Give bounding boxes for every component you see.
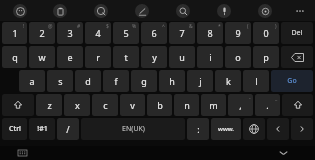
button[interactable]: d — [75, 70, 101, 92]
staticText: z — [47, 99, 52, 111]
button[interactable]: , — [228, 94, 253, 116]
button[interactable]: Translate — [80, 0, 121, 21]
button[interactable]: Ctrl — [2, 118, 27, 140]
button[interactable]: More options — [285, 0, 315, 21]
button[interactable]: Handwriting — [121, 0, 162, 21]
button[interactable]: b — [147, 94, 172, 116]
button[interactable]: Go — [271, 70, 313, 92]
staticText: _ — [275, 95, 278, 102]
button[interactable]: EN(UK) — [81, 118, 185, 140]
button[interactable]: Voice input — [203, 0, 244, 21]
button[interactable]: y — [141, 46, 167, 68]
staticText: r — [96, 51, 100, 63]
button[interactable]: 1 — [2, 22, 27, 44]
button[interactable]: m — [201, 94, 226, 116]
button[interactable]: Change language — [243, 118, 265, 140]
button[interactable]: 4 — [85, 22, 111, 44]
staticText: * — [218, 23, 221, 30]
button[interactable]: 8 — [197, 22, 223, 44]
button[interactable]: v — [120, 94, 145, 116]
button[interactable]: z — [36, 94, 62, 116]
staticText: 7 — [179, 27, 185, 39]
button[interactable]: i — [197, 46, 223, 68]
button[interactable]: Clipboard — [40, 0, 80, 21]
button[interactable]: : — [187, 118, 209, 140]
staticText: EN(UK) — [122, 124, 145, 134]
button[interactable]: Backspace — [281, 46, 313, 68]
staticText: m — [209, 99, 218, 111]
button[interactable]: 5 — [113, 22, 139, 44]
button[interactable]: 9 — [225, 22, 251, 44]
button[interactable]: p — [253, 46, 279, 68]
staticText: 8 — [207, 27, 213, 39]
button[interactable]: k — [215, 70, 241, 92]
button[interactable]: c — [92, 94, 118, 116]
button[interactable]: t — [113, 46, 139, 68]
button[interactable]: 6 — [141, 22, 167, 44]
staticText: ( — [247, 23, 249, 30]
button[interactable]: Hide keyboard — [275, 146, 291, 160]
button[interactable]: a — [19, 70, 45, 92]
button[interactable]: x — [64, 94, 90, 116]
button[interactable]: Move cursor right — [291, 118, 313, 140]
button[interactable]: 7 — [169, 22, 195, 44]
button[interactable]: Shift — [282, 94, 313, 116]
button[interactable]: q — [2, 46, 27, 68]
staticText: 6 — [151, 27, 157, 39]
staticText: 5 — [123, 27, 129, 39]
staticText: @ — [48, 23, 53, 30]
button[interactable]: www. — [211, 118, 241, 140]
button[interactable]: Shift — [2, 94, 34, 116]
button[interactable]: l — [243, 70, 269, 92]
staticText: w — [38, 51, 46, 63]
button[interactable]: w — [29, 46, 55, 68]
staticText: 9 — [235, 27, 241, 39]
staticText: b — [157, 99, 163, 111]
staticText: i — [209, 51, 212, 63]
staticText: y — [152, 51, 157, 63]
button[interactable]: n — [174, 94, 199, 116]
staticText: . — [266, 99, 269, 111]
button[interactable]: o — [225, 46, 251, 68]
staticText: t — [124, 51, 128, 63]
staticText: g — [141, 75, 147, 87]
button[interactable]: r — [85, 46, 111, 68]
button[interactable]: e — [57, 46, 83, 68]
staticText: v — [130, 99, 135, 111]
button[interactable]: Move cursor left — [267, 118, 289, 140]
button[interactable]: j — [187, 70, 213, 92]
staticText: : — [197, 123, 200, 135]
staticText: Ctrl — [9, 124, 21, 134]
staticText: ! — [23, 23, 25, 30]
staticText: e — [67, 51, 73, 63]
staticText: d — [85, 75, 91, 87]
button[interactable]: . — [255, 94, 280, 116]
button[interactable]: Search — [162, 0, 203, 21]
button[interactable]: 0 — [253, 22, 279, 44]
button[interactable]: h — [159, 70, 185, 92]
button[interactable]: s — [47, 70, 73, 92]
staticText: 0 — [263, 27, 269, 39]
staticText: l — [255, 75, 258, 87]
button[interactable]: Emoji — [0, 0, 40, 21]
button[interactable]: Settings — [244, 0, 285, 21]
staticText: Go — [287, 76, 297, 86]
button[interactable]: 2 — [29, 22, 55, 44]
staticText: s — [58, 75, 63, 87]
staticText: f — [114, 75, 118, 87]
button[interactable]: Keyboard — [14, 146, 30, 160]
button[interactable]: Del — [281, 22, 313, 44]
button[interactable]: g — [131, 70, 157, 92]
button[interactable]: f — [103, 70, 129, 92]
staticText: - — [249, 95, 251, 102]
staticText: 2 — [39, 27, 45, 39]
button[interactable]: 3 — [57, 22, 83, 44]
staticText: k — [226, 75, 231, 87]
staticText: h — [169, 75, 175, 87]
staticText: $ — [106, 23, 109, 30]
button[interactable]: !#1 — [29, 118, 55, 140]
staticText: , — [239, 99, 242, 111]
staticText: ^ — [162, 23, 165, 30]
button[interactable]: / — [57, 118, 79, 140]
button[interactable]: u — [169, 46, 195, 68]
